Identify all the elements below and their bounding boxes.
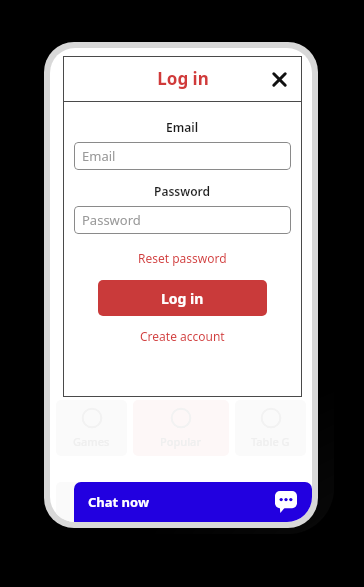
staticText: Email bbox=[166, 119, 199, 135]
other: Open chat bbox=[274, 490, 298, 514]
staticText: Table G bbox=[251, 434, 290, 449]
staticText: Games bbox=[73, 434, 110, 449]
staticText: Password bbox=[82, 211, 141, 229]
button[interactable]: Email bbox=[74, 142, 291, 170]
button[interactable]: Create account bbox=[136, 326, 229, 346]
staticText: Log in bbox=[161, 289, 204, 308]
staticText: Email bbox=[82, 147, 116, 165]
staticText: Log in bbox=[157, 67, 209, 90]
staticText: Reset password bbox=[138, 250, 227, 266]
button[interactable]: Chat now bbox=[74, 482, 312, 522]
staticText: Password bbox=[154, 183, 211, 199]
button[interactable]: Log in bbox=[98, 280, 267, 316]
button[interactable] bbox=[184, 482, 306, 522]
button[interactable]: Password bbox=[74, 206, 291, 234]
staticText: Popular bbox=[160, 434, 202, 449]
staticText: Chat now bbox=[88, 493, 150, 511]
button[interactable] bbox=[56, 482, 178, 522]
button[interactable]: Close bbox=[264, 64, 294, 94]
button[interactable]: Reset password bbox=[134, 248, 231, 268]
staticText: Create account bbox=[140, 328, 225, 344]
